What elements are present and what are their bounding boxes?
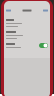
button[interactable]: Back — [6, 9, 11, 11]
